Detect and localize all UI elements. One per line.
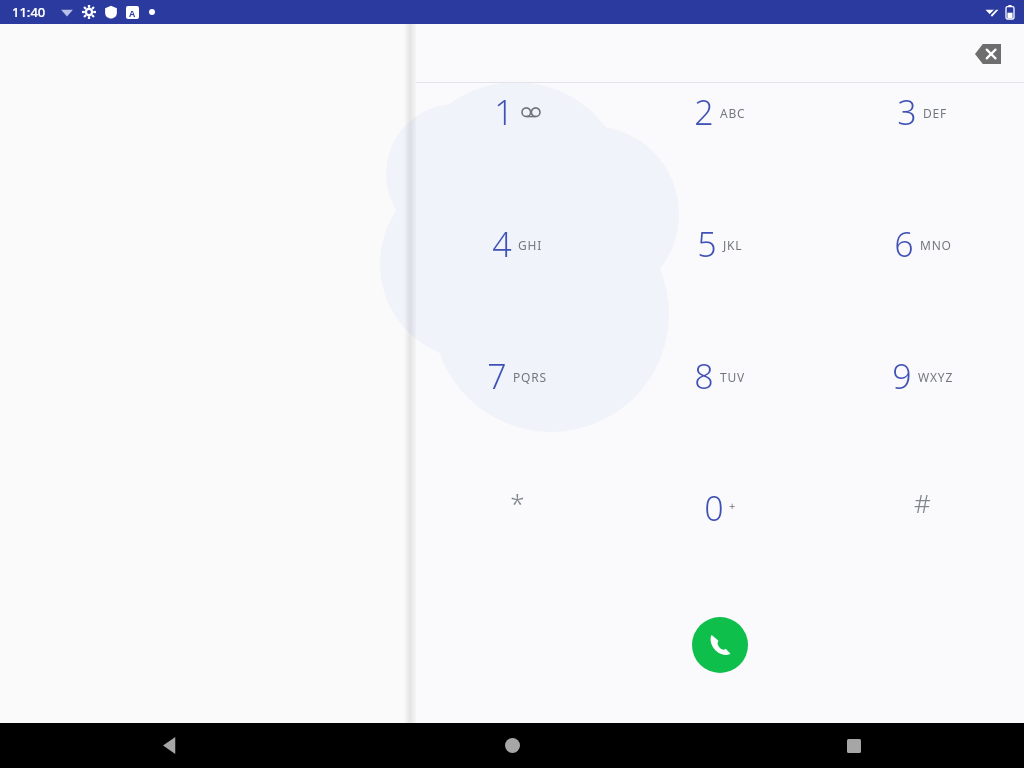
staticText: 5	[697, 221, 717, 267]
button[interactable]: 4	[416, 215, 618, 347]
staticText: A	[129, 7, 136, 19]
staticText: 11:40	[12, 3, 46, 21]
button[interactable]: 5	[618, 215, 821, 347]
staticText: 7	[487, 353, 507, 399]
staticText: JKL	[723, 237, 743, 253]
staticText: TUV	[720, 369, 746, 385]
button[interactable]: 6	[821, 215, 1024, 347]
staticText: 6	[894, 221, 914, 267]
button[interactable]: 8	[618, 347, 821, 479]
staticText: 9	[892, 353, 912, 399]
button[interactable]: 9	[821, 347, 1024, 479]
button[interactable]: 1	[416, 83, 618, 215]
button[interactable]: Recent apps	[683, 723, 1024, 768]
staticText: WXYZ	[918, 369, 954, 385]
staticText: 2	[694, 89, 714, 135]
staticText: GHI	[518, 237, 543, 253]
button[interactable]: Call	[692, 617, 748, 673]
staticText: +	[729, 498, 736, 513]
button[interactable]: Backspace	[966, 32, 1010, 76]
staticText: 3	[897, 89, 917, 135]
staticText: 4	[492, 221, 512, 267]
staticText: ABC	[720, 105, 746, 121]
button[interactable]: 7	[416, 347, 618, 479]
button[interactable]: 0	[618, 479, 821, 611]
button[interactable]: 2	[618, 83, 821, 215]
staticText: 0	[704, 485, 724, 531]
staticText: MNO	[920, 237, 952, 253]
button[interactable]: Back	[0, 723, 342, 768]
button[interactable]: 3	[821, 83, 1024, 215]
button[interactable]: Home	[342, 723, 683, 768]
staticText: 1	[494, 89, 514, 135]
staticText: 8	[694, 353, 714, 399]
staticText: #	[914, 485, 931, 520]
staticText: DEF	[923, 105, 948, 121]
staticText: *	[510, 485, 525, 520]
button[interactable]: *	[416, 479, 618, 611]
button[interactable]: #	[821, 479, 1024, 611]
staticText: PQRS	[513, 369, 547, 385]
